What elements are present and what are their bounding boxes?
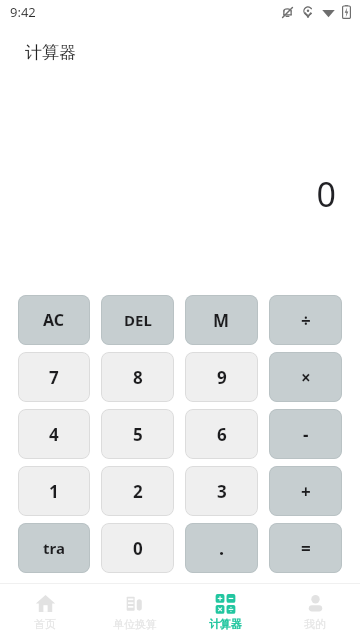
button[interactable]: = <box>269 523 342 573</box>
button[interactable]: × <box>269 352 342 402</box>
button[interactable]: 8 <box>101 352 174 402</box>
staticText: 单位换算 <box>113 617 157 631</box>
staticText: 3 <box>217 480 227 503</box>
staticText: M <box>213 309 230 332</box>
staticText: 计算器 <box>209 617 242 631</box>
staticText: - <box>303 423 309 446</box>
staticText: 计算器 <box>25 42 76 63</box>
button[interactable]: tra <box>18 523 90 573</box>
button[interactable]: 4 <box>18 409 90 459</box>
staticText: 5 <box>133 423 143 446</box>
button[interactable]: ÷ <box>269 295 342 345</box>
staticText: 1 <box>49 480 59 503</box>
staticText: × <box>301 366 311 389</box>
button[interactable]: DEL <box>101 295 174 345</box>
staticText: 6 <box>217 423 227 446</box>
button[interactable]: 5 <box>101 409 174 459</box>
staticText: . <box>219 536 225 561</box>
button[interactable]: + <box>269 466 342 516</box>
button[interactable]: 7 <box>18 352 90 402</box>
button[interactable]: 首页 <box>0 584 90 640</box>
button[interactable]: 3 <box>185 466 258 516</box>
button[interactable]: . <box>185 523 258 573</box>
button[interactable]: 我的 <box>270 584 360 640</box>
staticText: = <box>301 537 311 560</box>
button[interactable]: M <box>185 295 258 345</box>
staticText: 4 <box>49 423 59 446</box>
button[interactable]: 0 <box>101 523 174 573</box>
staticText: 7 <box>49 366 59 389</box>
staticText: ÷ <box>301 309 311 332</box>
button[interactable]: 计算器 <box>180 584 270 640</box>
button[interactable]: 单位换算 <box>90 584 180 640</box>
staticText: 我的 <box>304 617 326 631</box>
button[interactable]: 1 <box>18 466 90 516</box>
staticText: tra <box>43 538 65 558</box>
staticText: 9 <box>217 366 227 389</box>
staticText: 0 <box>133 537 143 560</box>
staticText: + <box>301 480 311 503</box>
button[interactable]: - <box>269 409 342 459</box>
staticText: AC <box>43 309 65 331</box>
staticText: 0 <box>316 171 336 217</box>
button[interactable]: 6 <box>185 409 258 459</box>
button[interactable]: 2 <box>101 466 174 516</box>
staticText: 8 <box>133 366 143 389</box>
staticText: 首页 <box>34 617 56 631</box>
staticText: 2 <box>133 480 143 503</box>
staticText: DEL <box>124 310 152 330</box>
button[interactable]: 9 <box>185 352 258 402</box>
staticText: 9:42 <box>10 3 36 21</box>
button[interactable]: AC <box>18 295 90 345</box>
